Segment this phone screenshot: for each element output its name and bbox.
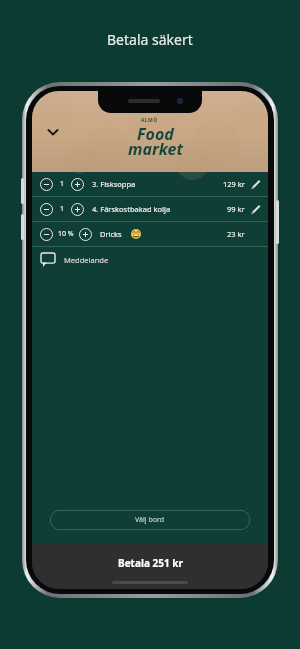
staticText: 3. Fisksoppa [92, 179, 136, 189]
button[interactable]: Minska [40, 228, 53, 241]
button[interactable]: Minska [32, 222, 268, 246]
staticText: Betala 251 kr [118, 556, 183, 570]
button[interactable]: Välj bord [50, 510, 250, 530]
staticText: ALMÖ [141, 117, 158, 124]
staticText: 4. Färskostbakad kolja [92, 204, 171, 214]
button[interactable]: Meddelande [32, 247, 268, 272]
button[interactable]: Öka [71, 203, 84, 216]
button[interactable]: Minska [40, 178, 53, 191]
staticText: Välj bord [135, 515, 165, 525]
staticText: Meddelande [64, 255, 109, 265]
button[interactable]: Minska [32, 197, 268, 221]
staticText: Dricks [100, 229, 122, 239]
staticText: 129 kr [223, 179, 245, 189]
staticText: Food [137, 123, 174, 145]
button[interactable]: Betala 251 kr [32, 544, 268, 589]
staticText: 23 kr [227, 229, 245, 239]
button[interactable]: Öka [71, 178, 84, 191]
button[interactable]: Öka [79, 228, 92, 241]
button[interactable]: Minska [40, 203, 53, 216]
button[interactable]: Minimera [40, 119, 66, 145]
button[interactable]: Redigera [250, 204, 261, 215]
staticText: Betala säkert [107, 30, 193, 49]
button[interactable]: Redigera [250, 179, 261, 190]
staticText: 1 [60, 204, 65, 214]
staticText: 99 kr [227, 204, 245, 214]
staticText: market [128, 138, 183, 160]
button[interactable]: Minska [32, 172, 268, 196]
staticText: 10 % [58, 229, 74, 239]
staticText: 1 [60, 179, 65, 189]
